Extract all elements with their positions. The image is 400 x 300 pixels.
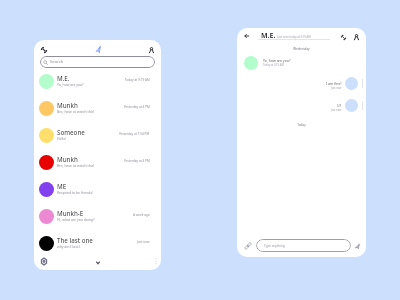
- staticText: Hi, what are you doing?: [57, 217, 95, 222]
- staticText: Last seen today at 9:19 AM: [277, 35, 311, 39]
- button[interactable]: Munkh: [34, 95, 161, 122]
- staticText: Munkh-E: [57, 209, 84, 217]
- button[interactable]: Search: [40, 56, 155, 68]
- staticText: A week ago: [133, 213, 150, 217]
- staticText: Just now: [331, 108, 342, 112]
- button[interactable]: Munkh: [34, 149, 161, 176]
- button[interactable]: More: [150, 255, 161, 267]
- staticText: Hello!: [57, 136, 67, 141]
- staticText: I am fine!: [326, 81, 342, 86]
- staticText: Munkh: [57, 155, 78, 163]
- button[interactable]: Calls: [38, 44, 50, 56]
- button[interactable]: ME: [34, 176, 161, 203]
- button[interactable]: Someone: [34, 122, 161, 149]
- staticText: M.E.: [261, 31, 276, 41]
- staticText: The last one: [57, 236, 93, 244]
- staticText: Today: [237, 123, 366, 127]
- button[interactable]: Attach: [242, 240, 254, 252]
- staticText: Yesterday at 7:54 PM: [119, 132, 150, 136]
- button[interactable]: The last one: [34, 230, 161, 257]
- staticText: Type anything: [264, 244, 285, 248]
- staticText: Wednesday: [237, 47, 366, 51]
- staticText: ME: [57, 182, 67, 190]
- staticText: Search: [50, 59, 64, 65]
- button[interactable]: Messages: [92, 43, 104, 55]
- staticText: U?: [337, 103, 342, 108]
- staticText: Bro, have to watch this!: [57, 163, 95, 168]
- staticText: Yo, how are you?: [263, 58, 291, 63]
- staticText: why am I last:(: [57, 244, 80, 249]
- staticText: Today at 9:19 AM: [125, 78, 150, 82]
- button[interactable]: Back: [241, 30, 253, 42]
- button[interactable]: M.E.: [34, 68, 161, 95]
- button[interactable]: Munkh-E: [34, 203, 161, 230]
- staticText: Today at 9:19 AM: [263, 63, 284, 67]
- staticText: Munkh: [57, 101, 78, 109]
- button[interactable]: Account: [145, 44, 157, 56]
- staticText: Just now: [331, 86, 342, 90]
- staticText: Bro, have to watch this!: [57, 109, 95, 114]
- staticText: Yo, how are you?: [57, 82, 84, 87]
- staticText: Just now: [137, 240, 150, 244]
- staticText: Yesterday at 4 PM: [124, 159, 150, 163]
- button[interactable]: Send: [351, 240, 363, 252]
- staticText: Respond to be friends!: [57, 190, 93, 195]
- button[interactable]: Profile: [350, 31, 362, 43]
- staticText: Yesterday at 4 PM: [124, 105, 150, 109]
- staticText: Someone: [57, 128, 85, 136]
- button[interactable]: Call: [337, 31, 349, 43]
- button[interactable]: Type anything: [256, 239, 351, 252]
- button[interactable]: Collapse: [92, 256, 104, 268]
- staticText: M.E.: [57, 74, 70, 82]
- button[interactable]: Home: [38, 255, 50, 267]
